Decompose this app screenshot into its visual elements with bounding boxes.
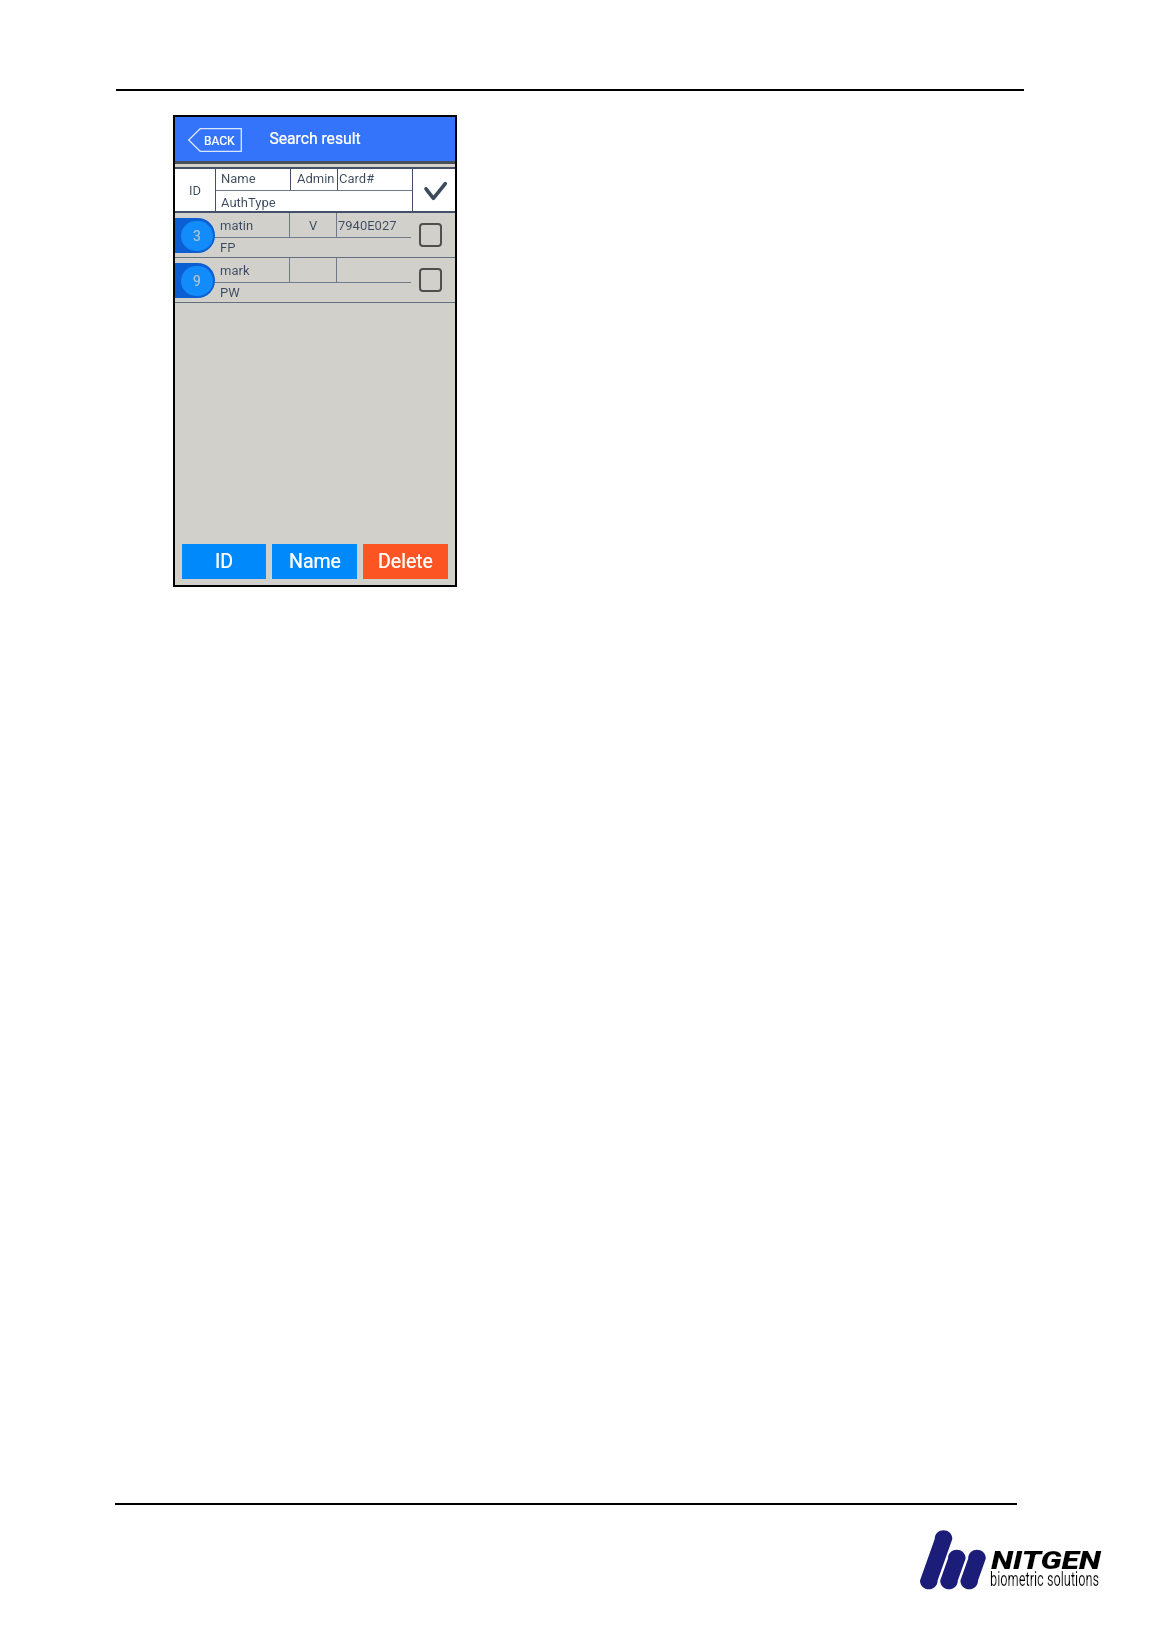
staticText: Card# bbox=[339, 171, 375, 186]
staticText: matin bbox=[220, 218, 254, 233]
staticText: Admin bbox=[297, 171, 335, 186]
staticText: V bbox=[309, 218, 318, 233]
button[interactable]: 9 bbox=[175, 258, 455, 303]
staticText: biometric solutions bbox=[990, 1567, 1099, 1591]
button[interactable]: 3 bbox=[175, 213, 455, 258]
staticText: Name bbox=[221, 171, 256, 186]
staticText: 9 bbox=[193, 273, 201, 289]
button[interactable]: ID bbox=[182, 544, 266, 579]
button[interactable]: Select row 3 bbox=[411, 213, 453, 258]
staticText: PW bbox=[220, 285, 240, 300]
button[interactable]: Select all bbox=[413, 167, 455, 213]
staticText: NITGEN bbox=[991, 1546, 1101, 1575]
staticText: ID bbox=[215, 550, 234, 573]
staticText: FP bbox=[220, 240, 236, 255]
staticText: Search result bbox=[269, 129, 361, 148]
staticText: mark bbox=[220, 263, 250, 278]
button[interactable]: Select row 9 bbox=[411, 258, 453, 303]
staticText: Name bbox=[289, 550, 341, 573]
button[interactable]: Back bbox=[188, 128, 242, 152]
staticText: ID bbox=[189, 183, 202, 198]
staticText: Delete bbox=[378, 550, 433, 573]
staticText: 3 bbox=[193, 228, 201, 244]
button[interactable]: Delete bbox=[363, 544, 448, 579]
button[interactable]: Name bbox=[272, 544, 357, 579]
staticText: AuthType bbox=[221, 195, 276, 210]
staticText: BACK bbox=[204, 134, 235, 148]
staticText: 7940E027 bbox=[338, 218, 397, 233]
